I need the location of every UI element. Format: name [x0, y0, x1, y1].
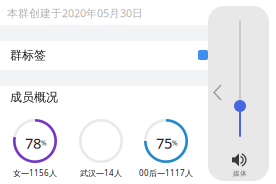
button[interactable]: Media volume — [0, 0, 276, 184]
button[interactable]: Back — [0, 0, 276, 184]
button[interactable]: Volume level — [0, 0, 276, 184]
staticText: 本群创建于2020年05月30日 — [7, 6, 143, 20]
staticText: 00后—1117人 — [139, 168, 193, 178]
button[interactable]: 本群创建于2020年05月30日 — [0, 0, 276, 184]
staticText: 媒体 — [233, 169, 247, 178]
staticText: 75 — [156, 133, 172, 153]
staticText: % — [41, 139, 47, 147]
button[interactable]: 群标签 — [0, 0, 276, 184]
staticText: 武汉—14人 — [80, 168, 122, 178]
staticText: 成员概况 — [10, 90, 58, 105]
staticText: 78 — [25, 133, 41, 153]
staticText: % — [172, 139, 178, 147]
staticText: 女—1156人 — [13, 168, 57, 178]
staticText: 群标签 — [10, 48, 46, 63]
